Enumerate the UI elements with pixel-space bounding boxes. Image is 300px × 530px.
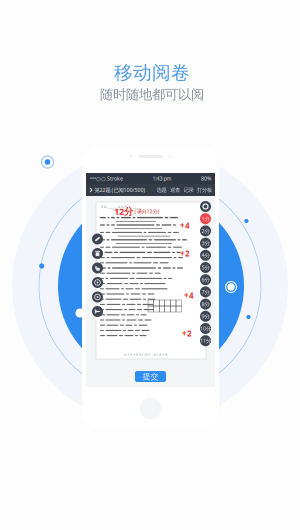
staticText: 6分 bbox=[201, 276, 209, 283]
staticText: 3分 bbox=[201, 240, 209, 247]
staticText: 8分 bbox=[201, 301, 209, 308]
staticText: +4 bbox=[180, 220, 190, 231]
staticText: 巡查 bbox=[170, 187, 180, 193]
staticText: 班级 ________ 姓名(学号) ________ bbox=[101, 205, 141, 208]
button[interactable]: Score 7分 bbox=[200, 286, 211, 297]
button[interactable]: Tool bbox=[92, 248, 103, 259]
staticText: 记录 bbox=[183, 187, 193, 193]
staticText: 5分 bbox=[201, 264, 209, 271]
button[interactable]: 记录 bbox=[183, 187, 193, 193]
button[interactable]: Score 8分 bbox=[200, 299, 211, 310]
button[interactable]: 选题 bbox=[156, 187, 166, 193]
staticText: 12分 bbox=[114, 205, 133, 217]
staticText: 7分 bbox=[201, 288, 209, 295]
button[interactable]: Tool bbox=[92, 233, 103, 244]
button[interactable]: Score 9分 bbox=[200, 311, 211, 322]
staticText: (满分12分) bbox=[134, 208, 159, 215]
staticText: 9分 bbox=[201, 313, 209, 320]
button[interactable]: Tool bbox=[92, 306, 103, 317]
staticText: +2 bbox=[182, 328, 192, 339]
button[interactable]: Score 2分 bbox=[200, 225, 211, 236]
staticText: 此为学生答题扫描件 请认真评阅 bbox=[124, 353, 168, 356]
button[interactable]: Score 10分 bbox=[200, 323, 211, 334]
staticText: 选题 bbox=[156, 187, 166, 193]
button[interactable]: Score 6分 bbox=[200, 274, 211, 285]
button[interactable]: Tool bbox=[92, 277, 103, 288]
staticText: 1分 bbox=[201, 215, 209, 222]
button[interactable]: Score 1分 bbox=[200, 213, 211, 224]
button[interactable]: 打分板 bbox=[197, 187, 212, 193]
button[interactable]: Score 5分 bbox=[200, 262, 211, 273]
button[interactable]: 第22题 (已阅100/500) bbox=[89, 186, 145, 194]
staticText: +4 bbox=[184, 290, 194, 301]
staticText: 11分 bbox=[200, 337, 211, 344]
button[interactable]: Tool bbox=[92, 262, 103, 273]
button[interactable]: Score 3分 bbox=[200, 238, 211, 249]
staticText: 第22题 (已阅100/500) bbox=[94, 186, 145, 194]
button[interactable]: 提交 bbox=[135, 371, 166, 382]
button[interactable]: Settings bbox=[200, 201, 211, 212]
staticText: 移动阅卷 bbox=[114, 61, 190, 84]
staticText: •••○○ Stroke bbox=[90, 175, 123, 182]
staticText: 打分板 bbox=[197, 187, 212, 193]
staticText: 2分 bbox=[201, 227, 209, 234]
staticText: 80% bbox=[201, 175, 211, 182]
button[interactable]: Score 11分 bbox=[200, 335, 211, 346]
staticText: 4分 bbox=[201, 252, 209, 259]
button[interactable]: 巡查 bbox=[170, 187, 180, 193]
staticText: 随时随地都可以阅 bbox=[100, 86, 204, 103]
staticText: 提交 bbox=[142, 372, 158, 381]
staticText: 10分 bbox=[200, 325, 211, 332]
staticText: +2 bbox=[180, 248, 190, 259]
staticText: 1:43 pm bbox=[152, 175, 171, 182]
button[interactable]: Tool bbox=[92, 291, 103, 302]
button[interactable]: Score 4分 bbox=[200, 250, 211, 261]
